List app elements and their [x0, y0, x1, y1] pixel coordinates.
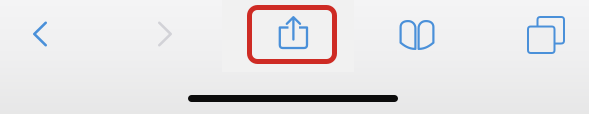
button[interactable]: Tabs	[501, 0, 589, 69]
button[interactable]: Share	[247, 0, 337, 66]
button[interactable]: Back	[0, 0, 85, 69]
button[interactable]: Forward	[120, 0, 210, 69]
button[interactable]: Bookmarks	[372, 0, 462, 70]
